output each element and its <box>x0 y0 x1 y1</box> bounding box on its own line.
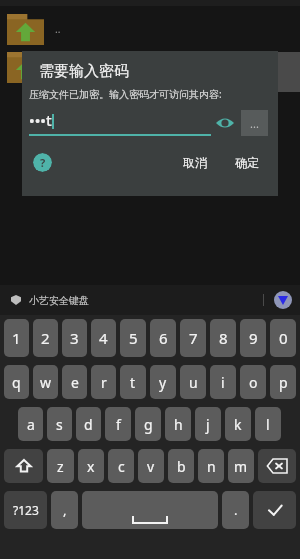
staticText: u <box>189 373 198 392</box>
staticText: x <box>87 457 95 476</box>
staticText: p <box>279 373 288 392</box>
staticText: •••t <box>29 110 52 130</box>
staticText: t <box>130 373 136 392</box>
button[interactable]: Keyboard menu <box>274 291 292 309</box>
button[interactable]: More options <box>241 110 268 136</box>
button[interactable]: i <box>210 365 236 399</box>
staticText: 1 <box>12 328 21 348</box>
button[interactable]: 取消 <box>176 151 214 174</box>
staticText: n <box>207 457 216 476</box>
button[interactable]: Shift <box>4 449 43 483</box>
button[interactable]: Backspace <box>258 449 296 483</box>
button[interactable]: Space <box>82 491 218 529</box>
button[interactable]: 3 <box>62 319 87 357</box>
staticText: y <box>159 373 167 392</box>
staticText: 0 <box>279 328 288 348</box>
button[interactable]: Help <box>33 153 52 172</box>
staticText: w <box>40 373 52 392</box>
button[interactable]: g <box>135 407 161 441</box>
button[interactable]: s <box>47 407 72 441</box>
button[interactable]: 6 <box>150 319 176 357</box>
button[interactable]: r <box>91 365 116 399</box>
button[interactable]: l <box>255 407 281 441</box>
button[interactable]: q <box>4 365 29 399</box>
button[interactable]: j <box>195 407 221 441</box>
button[interactable]: o <box>240 365 266 399</box>
staticText: 3 <box>70 328 79 348</box>
staticText: o <box>249 373 258 392</box>
button[interactable]: 4 <box>91 319 116 357</box>
button[interactable]: 8 <box>210 319 236 357</box>
staticText: d <box>84 415 93 434</box>
staticText: i <box>221 373 225 392</box>
staticText: . <box>234 501 238 519</box>
button[interactable]: Show password <box>214 112 236 134</box>
staticText: m <box>234 457 248 476</box>
button[interactable]: y <box>150 365 176 399</box>
button[interactable]: a <box>18 407 43 441</box>
button[interactable]: p <box>270 365 296 399</box>
staticText: a <box>27 415 35 434</box>
staticText: q <box>12 373 21 392</box>
staticText: 2 <box>41 328 50 348</box>
button[interactable]: 5 <box>120 319 146 357</box>
button[interactable]: , <box>51 491 78 529</box>
button[interactable]: f <box>105 407 131 441</box>
button[interactable]: b <box>168 449 194 483</box>
button[interactable]: e <box>62 365 87 399</box>
staticText: r <box>101 373 107 392</box>
button[interactable]: x <box>78 449 104 483</box>
staticText: l <box>266 415 270 434</box>
button[interactable]: c <box>108 449 134 483</box>
staticText: , <box>63 501 67 519</box>
staticText: h <box>174 415 183 434</box>
button[interactable]: . <box>222 491 249 529</box>
staticText: k <box>234 415 242 434</box>
staticText: 需要输入密码 <box>39 62 129 81</box>
button[interactable]: 1 <box>4 319 29 357</box>
button[interactable]: .. <box>0 7 300 51</box>
staticText: j <box>206 415 210 434</box>
staticText: 8 <box>219 328 228 348</box>
staticText: .. <box>55 22 61 36</box>
button[interactable]: z <box>47 449 74 483</box>
staticText: 小艺安全键盘 <box>29 294 89 307</box>
staticText: 取消 <box>183 155 207 170</box>
button[interactable]: ?123 <box>4 491 47 529</box>
button[interactable]: d <box>76 407 101 441</box>
button[interactable]: m <box>228 449 254 483</box>
staticText: ... <box>250 116 259 131</box>
staticText: b <box>177 457 186 476</box>
staticText: 6 <box>159 328 168 348</box>
button[interactable]: 7 <box>180 319 206 357</box>
staticText: 7 <box>189 328 198 348</box>
staticText: 4 <box>99 328 108 348</box>
staticText: 5 <box>129 328 138 348</box>
button[interactable]: v <box>138 449 164 483</box>
button[interactable]: u <box>180 365 206 399</box>
staticText: z <box>57 457 64 476</box>
staticText: v <box>147 457 155 476</box>
button[interactable]: n <box>198 449 224 483</box>
staticText: 确定 <box>235 155 259 170</box>
button[interactable]: k <box>225 407 251 441</box>
button[interactable]: Enter <box>253 491 296 529</box>
staticText: g <box>144 415 153 434</box>
staticText: c <box>118 457 125 476</box>
button[interactable]: 0 <box>270 319 296 357</box>
staticText: ? <box>40 155 46 170</box>
staticText: s <box>56 415 63 434</box>
button[interactable]: 9 <box>240 319 266 357</box>
staticText: 压缩文件已加密。输入密码才可访问其内容: <box>29 87 222 101</box>
button[interactable]: w <box>33 365 58 399</box>
staticText: 9 <box>249 328 258 348</box>
staticText: ?123 <box>13 502 39 518</box>
button[interactable]: 确定 <box>228 151 266 174</box>
button[interactable]: h <box>165 407 191 441</box>
button[interactable]: t <box>120 365 146 399</box>
staticText: e <box>71 373 79 392</box>
button[interactable]: 2 <box>33 319 58 357</box>
staticText: f <box>116 415 121 434</box>
